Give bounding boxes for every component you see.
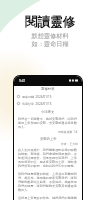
staticText: 我們在一切患難中，祂就安慰我們，叫我們能用上帝所賜的安慰，去安慰那遭各樣患難的人… [18, 117, 78, 129]
staticText: 默想靈修材料 如：靈命日糧 [31, 32, 69, 48]
staticText: 靈修材料 [41, 87, 55, 91]
button[interactable]: 靈命日糧 2024/01/15 [17, 93, 79, 100]
staticText: 哥林多後書 1:4 [58, 130, 78, 134]
staticText: 今日經文 [41, 110, 55, 114]
staticText: 安慰的上帝 [40, 137, 57, 141]
staticText: 在人生的旅途中，我們總會遇到各樣的困難與挑戰。有時候，我們會感到孤單無助，不知道… [18, 148, 78, 200]
button[interactable]: 荒漠甘泉 2024/01/15 [17, 100, 79, 107]
staticText: 閱讀靈修 [25, 14, 75, 30]
button[interactable]: 靈修材料 [14, 86, 82, 92]
staticText: 靈命日糧 2024/01/15 [22, 95, 52, 99]
staticText: 荒漠甘泉 2024/01/15 [22, 102, 52, 106]
staticText: 作者：王大明 [61, 142, 78, 146]
staticText: 9:41 [19, 79, 26, 83]
